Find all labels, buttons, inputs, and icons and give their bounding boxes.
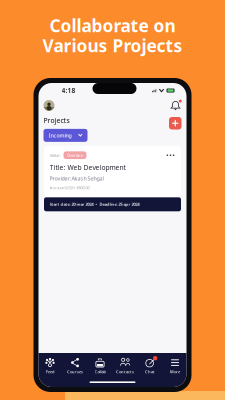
- button[interactable]: Profile: [43, 100, 54, 111]
- button[interactable]: Feed: [37, 357, 62, 375]
- staticText: Status:: [49, 153, 60, 158]
- button[interactable]: Courses: [62, 357, 87, 375]
- staticText: Collaborate on: [49, 14, 175, 37]
- staticText: Start date: 20 mar 2024 • Deadline: 25 a…: [49, 202, 139, 207]
- staticText: Amount (USD): $800.00: [49, 185, 89, 190]
- staticText: Projects: [43, 116, 69, 125]
- staticText: Courses: [67, 369, 83, 374]
- staticText: Feed: [46, 369, 54, 374]
- button[interactable]: Add project: [169, 117, 181, 129]
- staticText: Contacts: [116, 369, 134, 374]
- button[interactable]: More: [162, 357, 187, 375]
- staticText: More: [170, 369, 180, 374]
- staticText: Overdue: [67, 153, 83, 158]
- staticText: 4:18: [61, 86, 75, 95]
- staticText: Chat: [145, 369, 155, 374]
- staticText: Incoming: [48, 132, 71, 139]
- staticText: Collab: [94, 369, 105, 374]
- staticText: Title: Web Development: [49, 163, 125, 172]
- button[interactable]: Contacts: [112, 357, 137, 375]
- button[interactable]: Collab: [87, 357, 112, 375]
- staticText: Various Projects: [42, 34, 182, 57]
- button[interactable]: Incoming: [43, 129, 87, 142]
- button[interactable]: Chat: [137, 357, 162, 375]
- button[interactable]: More options: [165, 152, 175, 159]
- button[interactable]: Notifications: [169, 100, 181, 111]
- staticText: Provider: Akash Sehgal: [49, 175, 103, 182]
